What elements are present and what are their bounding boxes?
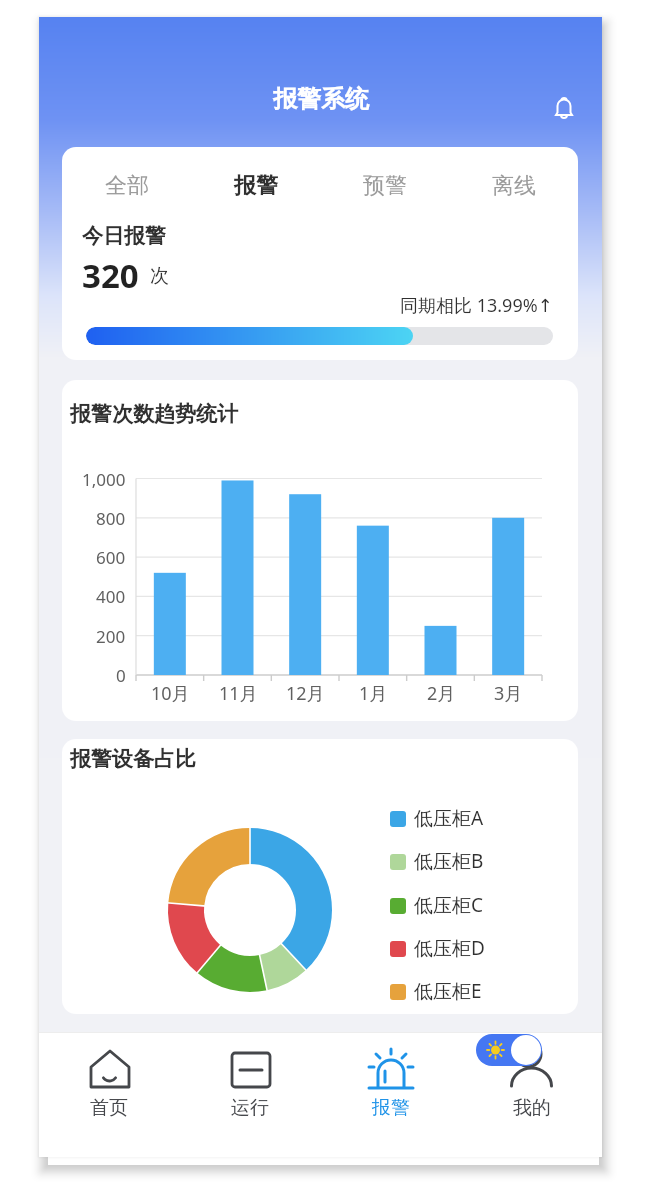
button[interactable]: 报警 [320, 1032, 461, 1157]
staticText: 报警次数趋势统计 [70, 401, 238, 427]
staticText: 200 [96, 625, 126, 648]
staticText: 400 [96, 585, 126, 608]
staticText: 运行 [231, 1096, 269, 1120]
staticText: 12月 [286, 681, 325, 706]
staticText: 报警 [234, 172, 278, 200]
staticText: 同期相比 13.99%↑ [400, 293, 553, 318]
staticText: 低压柜D [414, 935, 485, 961]
staticText: 离线 [492, 172, 536, 200]
staticText: 3月 [494, 681, 523, 706]
button[interactable]: 运行 [179, 1032, 320, 1157]
staticText: 次 [150, 264, 169, 288]
staticText: 全部 [105, 172, 149, 200]
button[interactable]: 报警 [191, 168, 320, 204]
staticText: 预警 [363, 172, 407, 200]
staticText: 低压柜E [414, 978, 482, 1004]
button[interactable]: 首页 [39, 1032, 179, 1157]
staticText: 首页 [90, 1096, 128, 1120]
staticText: 报警 [372, 1096, 410, 1120]
staticText: 320 [82, 253, 139, 298]
staticText: 800 [96, 507, 126, 530]
staticText: 报警系统 [273, 84, 369, 114]
staticText: 0 [116, 664, 126, 687]
staticText: 1月 [359, 681, 388, 706]
staticText: 2月 [427, 681, 456, 706]
staticText: 低压柜A [414, 805, 484, 831]
staticText: 低压柜C [414, 892, 484, 918]
staticText: 10月 [151, 681, 190, 706]
staticText: 11月 [219, 681, 258, 706]
staticText: 今日报警 [82, 223, 166, 249]
button[interactable] [476, 1034, 542, 1066]
staticText: 1,000 [82, 468, 126, 491]
button[interactable]: 我的 [461, 1032, 602, 1157]
staticText: 报警设备占比 [70, 746, 196, 772]
button[interactable]: 预警 [320, 168, 449, 204]
button[interactable]: 离线 [449, 168, 578, 204]
button[interactable]: 全部 [62, 168, 191, 204]
button[interactable] [552, 96, 576, 120]
staticText: 我的 [513, 1096, 551, 1120]
staticText: 低压柜B [414, 848, 484, 874]
staticText: 600 [96, 546, 126, 569]
